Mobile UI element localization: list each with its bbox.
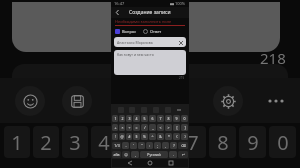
staticText: 5 [143,116,146,121]
staticText: абв [113,152,120,157]
button[interactable]: ( [173,133,180,140]
button[interactable]: 8 [165,115,172,122]
button[interactable]: Save [62,86,92,116]
button[interactable]: : [146,142,153,149]
button[interactable]: Ответ [143,29,162,34]
button[interactable]: > [165,124,172,131]
button[interactable]: 3 [62,126,88,158]
button[interactable]: * [165,133,172,140]
button[interactable]: 9 [173,115,180,122]
staticText: 3 [128,116,131,121]
staticText: Анастасия Морозова [117,40,153,45]
button[interactable]: 6 [149,115,156,122]
button[interactable]: Settings [213,86,243,116]
staticText: $ [135,134,138,139]
staticText: _ [152,125,154,130]
staticText: = [135,125,138,130]
button[interactable]: / [141,124,148,131]
button[interactable]: 2 [33,126,59,158]
button[interactable]: ) [181,133,188,140]
staticText: ? [173,143,175,148]
button[interactable]: ' [130,142,137,149]
button[interactable]: [ [173,124,180,131]
button[interactable]: × [119,124,125,131]
button[interactable]: ↵ [178,151,188,158]
button[interactable]: 0 [269,126,296,158]
button[interactable]: Clear [177,39,184,46]
button[interactable]: ^ [149,133,156,140]
button[interactable]: Back [127,160,133,166]
staticText: ⌫ [181,144,186,148]
button[interactable]: 2 [119,115,125,122]
button[interactable]: ! [112,133,118,140]
button[interactable]: " [138,142,145,149]
button[interactable]: Анастасия Морозова [114,37,186,47]
button[interactable]: ] [181,124,188,131]
staticText: > [167,125,170,130]
button[interactable]: = [133,124,140,131]
button[interactable]: % [141,133,148,140]
button[interactable]: # [126,133,132,140]
button[interactable]: Recents [168,160,174,166]
button[interactable]: Home [147,160,153,166]
button[interactable]: Expand [176,107,182,113]
button[interactable]: 4 [133,115,140,122]
button[interactable]: Русский [140,151,168,158]
button[interactable]: абв [112,151,121,158]
staticText: 2 [40,129,52,156]
staticText: & [159,134,162,139]
staticText: % [143,134,146,139]
staticText: 2 [121,116,124,121]
staticText: 9 [175,116,178,121]
button[interactable]: 3 [126,115,132,122]
staticText: Создание записи [129,9,171,16]
button[interactable]: Back [113,8,122,17]
button[interactable]: 8 [209,126,236,158]
staticText: Русский [147,152,161,157]
staticText: : [149,143,150,148]
staticText: 4 [135,116,138,121]
button[interactable]: , [131,151,139,158]
button[interactable]: Stickers [15,86,45,116]
staticText: 16:47 [114,1,125,6]
button[interactable]: Вопрос [115,29,137,34]
button[interactable]: 5 [120,126,146,158]
staticText: / [144,125,146,130]
button[interactable]: 1/3 [112,142,121,149]
button[interactable]: 4 [91,126,117,158]
button[interactable]: , [162,142,169,149]
button[interactable]: $ [133,133,140,140]
button[interactable]: & [157,133,164,140]
staticText: 100% [175,1,186,6]
button[interactable]: ; [154,142,161,149]
button[interactable]: 7 [157,115,164,122]
button[interactable]: 1 [4,126,30,158]
button[interactable]: - [122,142,129,149]
button[interactable]: 7 [179,126,206,158]
button[interactable]: 6 [149,126,176,158]
button[interactable]: ÷ [126,124,132,131]
button[interactable]: 1 [112,115,118,122]
button[interactable]: < [157,124,164,131]
button[interactable]: Как зовут и кем часто [114,50,186,75]
staticText: . [173,152,174,157]
button[interactable]: 9 [239,126,266,158]
button[interactable]: ☺ [122,151,130,158]
staticText: ] [184,125,186,130]
button[interactable]: @ [119,133,125,140]
button[interactable]: 5 [141,115,148,122]
staticText: [ [176,125,178,130]
staticText: ; [157,143,158,148]
button[interactable]: ⌫ [178,142,188,149]
button[interactable]: + [112,124,118,131]
button[interactable]: . [169,151,177,158]
button[interactable]: _ [149,124,156,131]
button[interactable]: 0 [181,115,188,122]
button[interactable]: ? [170,142,177,149]
button[interactable]: More options [262,87,290,115]
